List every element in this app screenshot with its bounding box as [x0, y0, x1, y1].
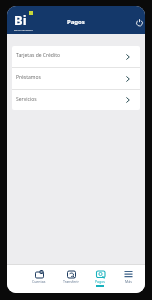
staticText: Más [125, 279, 132, 284]
button[interactable]: Transferir [56, 270, 86, 293]
button[interactable]: Cuentas [24, 270, 54, 293]
staticText: Pagos [95, 279, 106, 284]
staticText: Préstamos [16, 74, 126, 81]
button[interactable] [132, 15, 145, 29]
button[interactable]: Más [113, 270, 143, 293]
staticText: Cuentas [32, 279, 46, 284]
button[interactable]: Bi [14, 10, 40, 32]
staticText: Pagos [67, 18, 85, 26]
staticText: Bi [14, 11, 27, 29]
button[interactable]: Servicios [12, 90, 140, 110]
button[interactable]: Préstamos [12, 68, 140, 89]
staticText: Tarjetas de Crédito [16, 52, 126, 59]
button[interactable]: Pagos [85, 270, 115, 293]
button[interactable]: Tarjetas de Crédito [12, 46, 140, 67]
staticText: BANCO INDUSTRIAL [14, 29, 33, 32]
staticText: Servicios [16, 96, 126, 103]
staticText: Transferir [63, 279, 79, 284]
